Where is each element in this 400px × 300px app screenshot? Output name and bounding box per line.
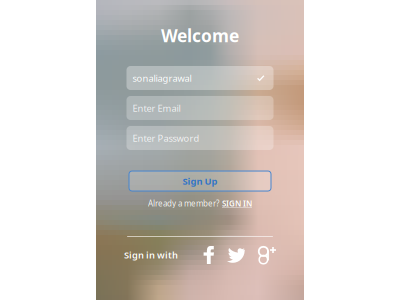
staticText: Enter Email	[132, 102, 180, 114]
button[interactable]: Sign in with Google Plus	[258, 246, 276, 264]
button[interactable]: sonaliagrawal	[126, 66, 273, 90]
staticText: Sign in with	[124, 249, 178, 261]
button[interactable]: Enter Email	[126, 96, 273, 120]
button[interactable]: Sign in with Twitter	[227, 247, 245, 263]
button[interactable]: Sign Up	[129, 171, 271, 191]
staticText: Sign Up	[182, 175, 217, 187]
button[interactable]: Already a member?	[144, 196, 256, 211]
button[interactable]: Sign in with Facebook	[200, 246, 214, 264]
staticText: Enter Password	[132, 132, 199, 144]
staticText: sonaliagrawal	[132, 72, 191, 84]
staticText: Welcome	[161, 24, 239, 47]
button[interactable]: Enter Password	[126, 126, 273, 150]
staticText: Already a member?	[148, 198, 219, 209]
staticText: SIGN IN	[222, 198, 252, 209]
